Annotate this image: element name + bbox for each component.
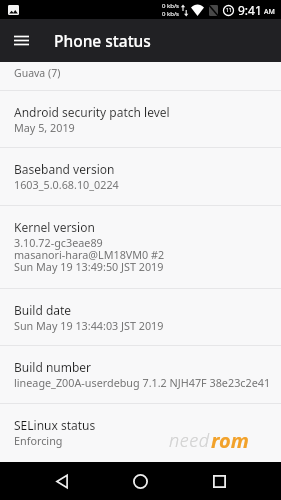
staticText: Build date xyxy=(14,302,72,318)
staticText: Sun May 19 13:44:03 JST 2019 xyxy=(14,318,164,333)
staticText: rom xyxy=(211,427,249,454)
staticText: Kernel version xyxy=(14,219,95,235)
staticText: 0 kb/s xyxy=(162,2,179,10)
staticText: masanori-hara@LM18VM0 #2 xyxy=(14,247,165,262)
staticText: Build number xyxy=(14,359,92,375)
staticText: Guava (7) xyxy=(14,66,61,80)
staticText: May 5, 2019 xyxy=(14,120,75,135)
button[interactable]: Kernel version xyxy=(0,206,281,289)
staticText: Baseband version xyxy=(14,161,115,177)
staticText: SELinux status xyxy=(14,417,96,433)
staticText: need xyxy=(169,428,210,453)
button[interactable]: Recent apps xyxy=(199,462,239,500)
button[interactable]: Back xyxy=(42,462,82,500)
staticText: 9:41 xyxy=(238,2,262,18)
staticText: 3.10.72-gc3eae89 xyxy=(14,235,103,250)
staticText: Sun May 19 13:49:50 JST 2019 xyxy=(14,259,164,274)
button[interactable]: Navigation menu xyxy=(0,19,43,62)
button[interactable]: Baseband version xyxy=(0,148,281,206)
staticText: Enforcing xyxy=(14,433,63,448)
staticText: AM xyxy=(264,7,275,17)
staticText: Phone status xyxy=(54,30,151,51)
staticText: lineage_Z00A-userdebug 7.1.2 NJH47F 38e2… xyxy=(14,375,271,390)
staticText: Android security patch level xyxy=(14,104,170,120)
staticText: 11 xyxy=(226,7,232,14)
button[interactable]: Home xyxy=(120,462,160,500)
button[interactable]: SELinux status xyxy=(0,404,281,462)
button[interactable]: Android security patch level xyxy=(0,91,281,148)
button[interactable]: Build date xyxy=(0,289,281,346)
staticText: 1603_5.0.68.10_0224 xyxy=(14,177,119,192)
staticText: 0 kb/s xyxy=(162,10,179,18)
button[interactable]: Build number xyxy=(0,346,281,404)
